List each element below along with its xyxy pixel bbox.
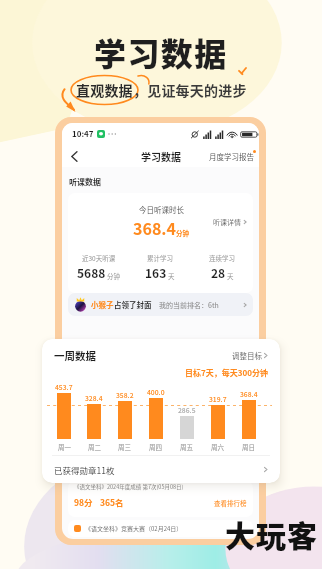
staticText: 一周数据 <box>54 348 96 363</box>
staticText: 查看排行榜 <box>214 498 247 507</box>
staticText: 《语文坐科》竞赛大赛（02月24日） <box>85 524 183 533</box>
staticText: 400.0 <box>147 387 165 397</box>
staticText: 目标7天，每天300分钟 <box>185 367 268 379</box>
staticText: 453.7 <box>55 382 73 392</box>
staticText: 月度学习报告 <box>209 151 254 162</box>
button[interactable]: 调整目标 <box>232 350 268 361</box>
staticText: 学习数据 <box>94 29 228 75</box>
button[interactable]: 听课详情 <box>213 217 247 227</box>
staticText: 368.4 <box>240 389 258 399</box>
staticText: ，见证每天的进步 <box>133 80 247 100</box>
staticText: 天 <box>227 271 234 280</box>
button[interactable]: 小猴子 <box>73 293 247 316</box>
staticText: 《语文坐科》2024年度成绩 第7次(05月08日) <box>74 483 184 491</box>
staticText: 连续学习 <box>209 253 235 262</box>
staticText: 286.5 <box>178 405 196 415</box>
staticText: 小猴子 <box>91 299 114 310</box>
staticText: 周五 <box>180 442 193 451</box>
staticText: 学习数据 <box>141 149 181 163</box>
staticText: 占领了封面 <box>114 299 152 310</box>
button[interactable]: 已获得勋章11枚 <box>54 456 268 483</box>
staticText: 我的当前排名：6th <box>159 300 219 310</box>
staticText: 大玩客 <box>225 512 318 555</box>
staticText: 周三 <box>118 442 131 451</box>
staticText: 累计学习 <box>147 253 173 262</box>
staticText: 98分 <box>74 496 93 508</box>
staticText: 周日 <box>242 442 255 451</box>
staticText: 358.2 <box>116 390 134 400</box>
staticText: 周一 <box>58 442 71 451</box>
staticText: 听课详情 <box>213 217 241 227</box>
staticText: 今日听课时长 <box>139 204 184 215</box>
staticText: 近30天听课 <box>82 253 116 262</box>
staticText: 直观数据 <box>76 80 133 100</box>
staticText: 分钟 <box>107 271 120 280</box>
staticText: 328.4 <box>85 393 103 403</box>
staticText: 天 <box>168 271 175 280</box>
staticText: 分钟 <box>176 228 189 237</box>
staticText: 听课数据 <box>69 176 101 188</box>
staticText: 163 <box>145 264 167 281</box>
staticText: 319.7 <box>209 394 227 404</box>
staticText: 周二 <box>88 442 101 451</box>
staticText: 调整目标 <box>232 350 262 361</box>
staticText: 周四 <box>149 442 162 451</box>
button[interactable]: Back <box>66 148 82 164</box>
button[interactable]: 月度学习报告 <box>209 151 254 162</box>
staticText: 10:47 <box>72 128 94 140</box>
staticText: 已获得勋章11枚 <box>54 464 115 476</box>
staticText: 365名 <box>100 496 124 508</box>
staticText: 368.4 <box>133 216 176 239</box>
staticText: 28 <box>211 264 226 281</box>
staticText: 5688 <box>77 264 106 281</box>
staticText: 周六 <box>211 442 224 451</box>
